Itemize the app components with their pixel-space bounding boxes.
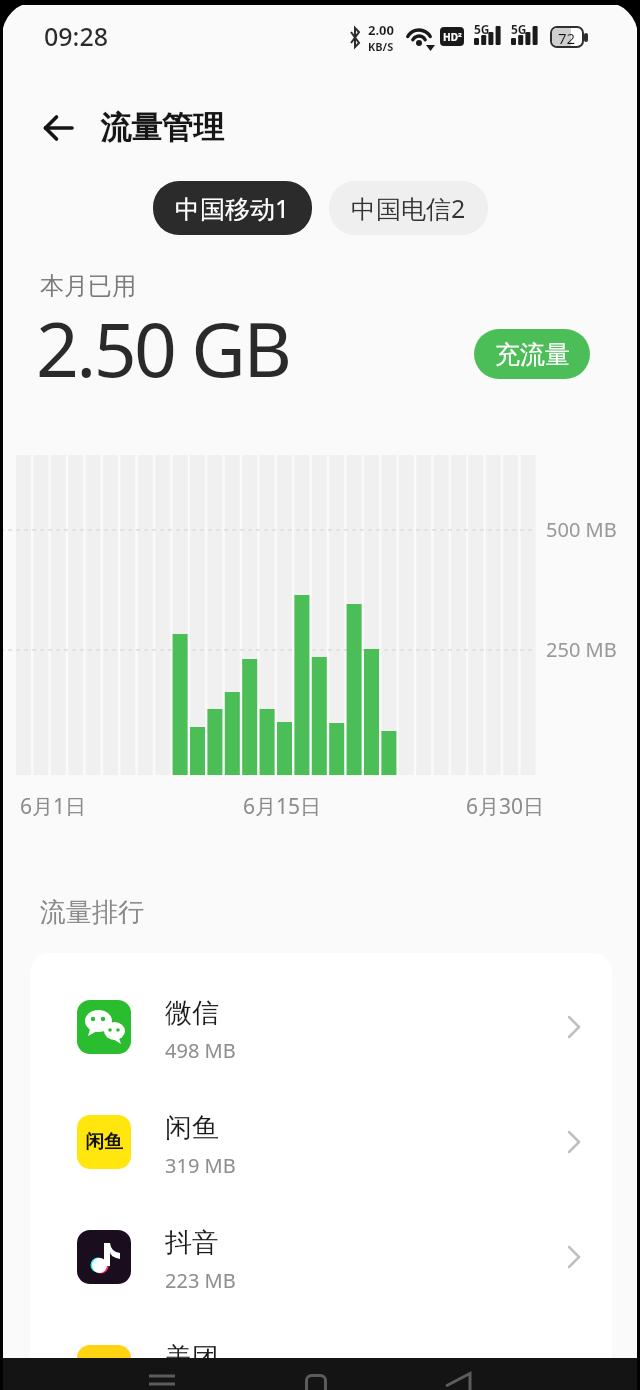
staticText: 2.00 [368, 21, 394, 39]
button[interactable]: 微信 [30, 969, 612, 1084]
button[interactable]: 充流量 [474, 329, 590, 379]
staticText: 中国电信2 [351, 191, 466, 225]
staticText: 250 MB [546, 636, 617, 663]
staticText: HD² [443, 30, 462, 44]
staticText: 319 MB [165, 1152, 236, 1179]
button[interactable]: 美团 [30, 1314, 612, 1390]
staticText: 6月15日 [243, 792, 322, 821]
staticText: 闲鱼 [85, 1130, 123, 1154]
staticText: 美团 [165, 1341, 219, 1375]
staticText: 闲鱼 [165, 1111, 219, 1145]
staticText: 5G [474, 21, 490, 37]
button[interactable]: 中国电信2 [329, 181, 488, 235]
staticText: 2.50 GB [36, 297, 290, 399]
staticText: 187 MB [165, 1382, 236, 1390]
button[interactable] [305, 1374, 327, 1390]
button[interactable]: 中国移动1 [153, 181, 312, 235]
staticText: 6月30日 [466, 792, 545, 821]
staticText: 流量管理 [100, 108, 224, 147]
staticText: 223 MB [165, 1267, 236, 1294]
button[interactable] [44, 113, 74, 143]
button[interactable]: 抖音 [30, 1199, 612, 1314]
staticText: 498 MB [165, 1037, 236, 1064]
staticText: 充流量 [495, 339, 570, 370]
staticText: 流量排行 [40, 896, 144, 929]
staticText: 本月已用 [40, 271, 136, 301]
staticText: 中国移动1 [175, 191, 290, 225]
button[interactable] [444, 1372, 474, 1390]
staticText: 09:28 [44, 19, 109, 53]
staticText: 500 MB [546, 516, 617, 543]
button[interactable]: 闲鱼 [30, 1084, 612, 1199]
staticText: 6月1日 [20, 792, 87, 821]
staticText: 抖音 [165, 1226, 219, 1260]
staticText: 5G [511, 21, 527, 37]
staticText: 72 [558, 28, 576, 46]
button[interactable] [149, 1372, 175, 1390]
staticText: KB/S [368, 39, 394, 54]
staticText: 微信 [165, 996, 219, 1030]
